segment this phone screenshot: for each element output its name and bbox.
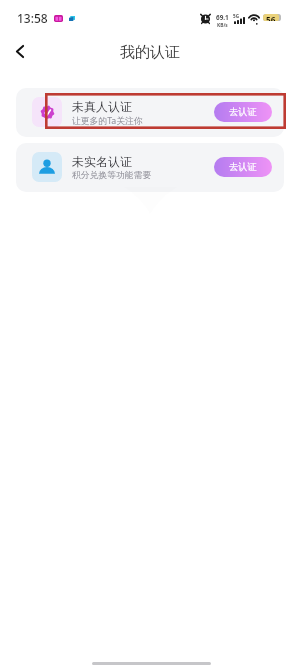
button[interactable]: 去认证: [214, 102, 272, 122]
staticText: 去认证: [229, 106, 257, 118]
staticText: 积分兑换等功能需要: [72, 170, 152, 181]
staticText: 69.1: [216, 13, 229, 22]
staticText: 我的认证: [120, 43, 180, 62]
staticText: 去认证: [229, 161, 257, 173]
staticText: 13:58: [17, 10, 48, 26]
staticText: KB/s: [217, 22, 228, 29]
button[interactable]: 去认证: [214, 157, 272, 177]
staticText: 5G: [233, 13, 239, 19]
staticText: 未实名认证: [72, 154, 132, 169]
staticText: 让更多的Ta关注你: [72, 115, 143, 127]
button[interactable]: 未真人认证: [16, 88, 284, 137]
staticText: 56: [266, 14, 276, 21]
button[interactable]: Back: [6, 37, 34, 65]
button[interactable]: 未实名认证: [16, 143, 284, 192]
staticText: 未真人认证: [72, 99, 132, 114]
